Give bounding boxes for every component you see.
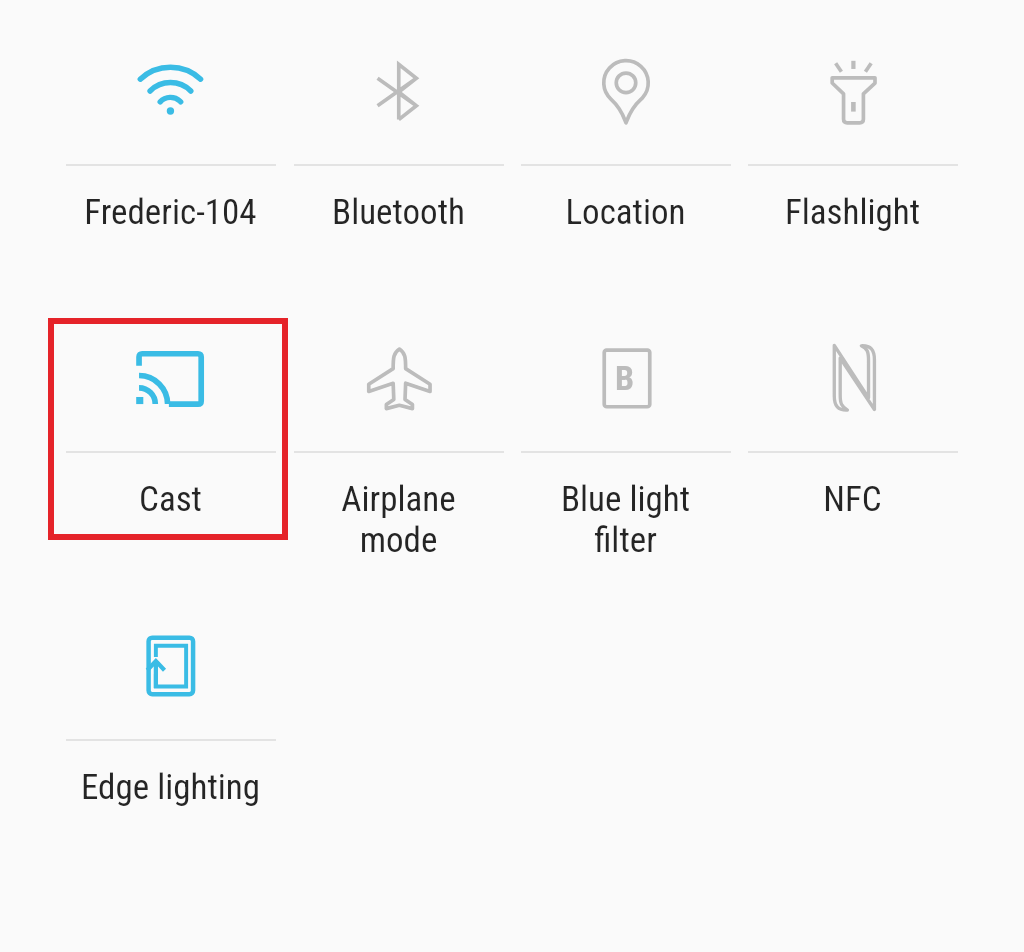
staticText: Edge lighting [57, 767, 284, 808]
button[interactable]: Wi-Fi [57, 38, 284, 278]
button[interactable]: Cast [57, 325, 284, 565]
staticText: Airplane mode [285, 479, 512, 561]
other: Cast [131, 339, 211, 419]
staticText: Bluetooth [285, 192, 512, 233]
other: Airplane mode [359, 339, 439, 419]
staticText: Frederic-104 [57, 192, 284, 233]
button[interactable]: Flashlight [739, 38, 966, 278]
staticText: Blue light filter [512, 479, 739, 561]
other: Location [586, 52, 666, 132]
button[interactable]: Bluetooth [285, 38, 512, 278]
other: Flashlight [813, 52, 893, 132]
other: Edge lighting [131, 627, 211, 707]
button[interactable]: Blue light filter [512, 325, 739, 565]
other: Blue light filter [586, 339, 666, 419]
staticText: NFC [739, 479, 966, 520]
staticText: Flashlight [739, 192, 966, 233]
button[interactable]: NFC [739, 325, 966, 565]
staticText: Cast [57, 479, 284, 520]
button[interactable]: Location [512, 38, 739, 278]
staticText: Location [512, 192, 739, 233]
staticText: B [615, 358, 635, 398]
other: NFC [813, 339, 893, 419]
button[interactable]: Airplane mode [285, 325, 512, 565]
button[interactable]: Edge lighting [57, 613, 284, 853]
other: Bluetooth [359, 52, 439, 132]
other: Wi-Fi [131, 52, 211, 132]
